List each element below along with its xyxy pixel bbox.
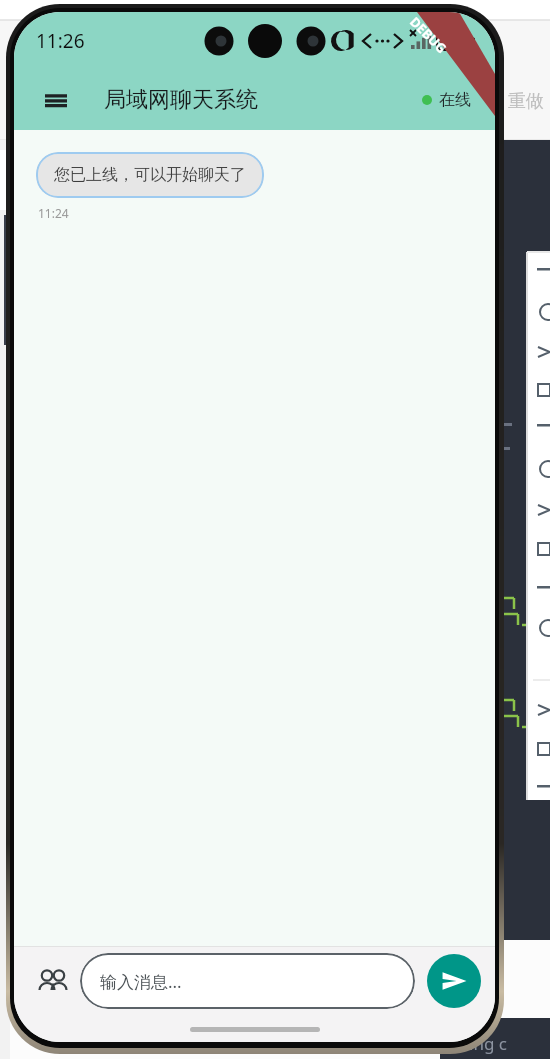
button[interactable]: Menu	[34, 78, 78, 122]
staticText: 11:26	[36, 28, 85, 54]
staticText: DEBUG	[406, 13, 451, 57]
staticText: 局域网聊天系统	[104, 86, 258, 114]
button[interactable]: 您已上线，可以开始聊天了	[36, 152, 264, 198]
button[interactable]: 输入消息...	[80, 953, 415, 1009]
staticText: ring c	[462, 1032, 507, 1055]
staticText: 您已上线，可以开始聊天了	[54, 165, 246, 185]
staticText: 11:24	[38, 205, 69, 221]
staticText: 在线	[439, 90, 471, 110]
button[interactable]: 在线	[418, 86, 475, 114]
button[interactable]: Users	[28, 957, 76, 1005]
staticText: 重做	[508, 90, 544, 113]
button[interactable]: Send	[427, 954, 481, 1008]
staticText: 输入消息...	[100, 970, 182, 993]
